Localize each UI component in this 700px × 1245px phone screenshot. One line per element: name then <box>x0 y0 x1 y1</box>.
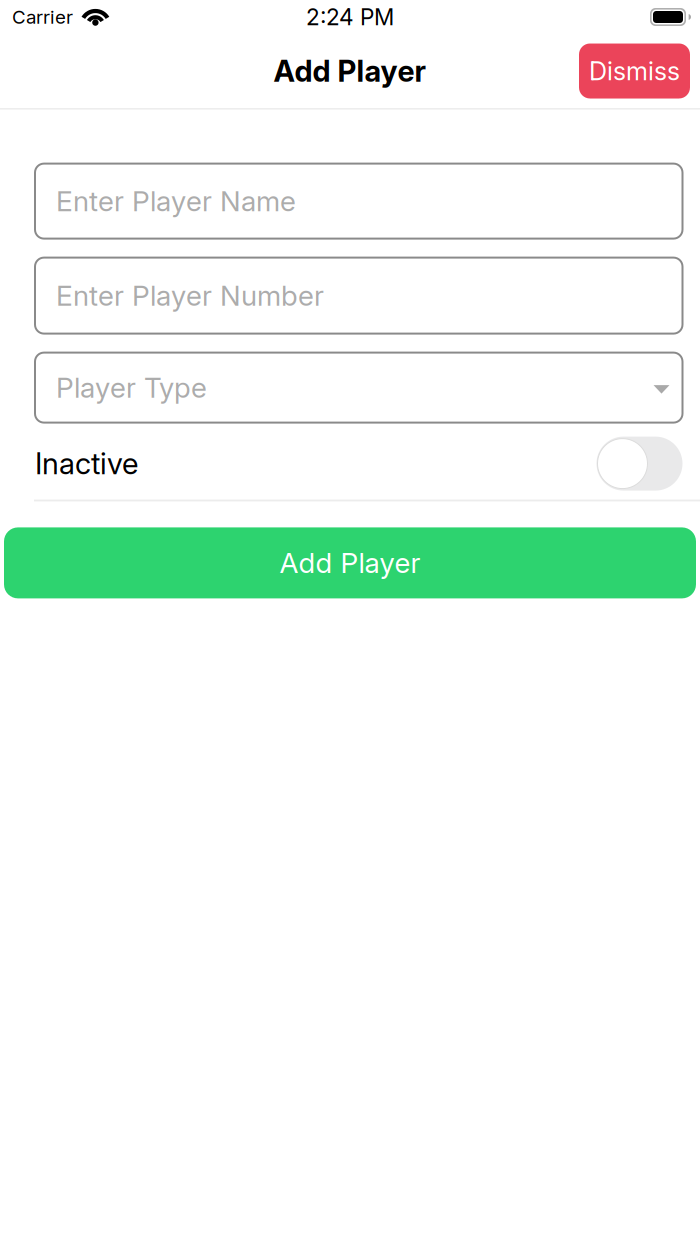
staticText: Carrier <box>12 6 73 28</box>
button[interactable]: Enter Player Number <box>35 258 682 334</box>
button[interactable]: Dismiss <box>579 43 690 98</box>
staticText: Add Player <box>279 546 420 580</box>
staticText: Add Player <box>273 53 426 89</box>
staticText: 2:24 PM <box>306 3 394 31</box>
button[interactable]: Enter Player Name <box>35 164 682 239</box>
button[interactable]: Inactive <box>35 437 682 491</box>
button[interactable]: Player Type <box>35 353 682 423</box>
staticText: Enter Player Number <box>56 279 324 313</box>
button[interactable]: Add Player <box>4 527 696 598</box>
staticText: Player Type <box>56 371 207 405</box>
staticText: Dismiss <box>589 56 680 86</box>
staticText: Enter Player Name <box>56 184 296 218</box>
staticText: Inactive <box>35 446 138 481</box>
